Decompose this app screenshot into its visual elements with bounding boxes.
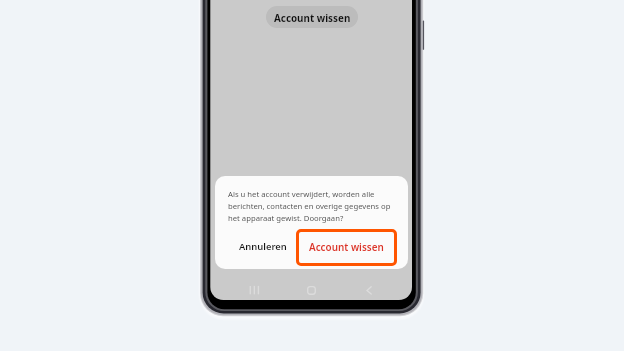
- button[interactable]: Home: [301, 281, 321, 301]
- staticText: Annuleren: [239, 240, 287, 253]
- button[interactable]: Back: [359, 281, 379, 301]
- button[interactable]: Annuleren: [227, 228, 299, 265]
- button[interactable]: Account wissen: [296, 229, 397, 266]
- staticText: Account wissen: [274, 11, 351, 24]
- button[interactable]: Account wissen: [266, 6, 358, 28]
- button[interactable]: Recent apps: [244, 281, 264, 301]
- staticText: Account wissen: [309, 240, 384, 253]
- staticText: Als u het account verwijdert, worden all…: [228, 189, 395, 224]
